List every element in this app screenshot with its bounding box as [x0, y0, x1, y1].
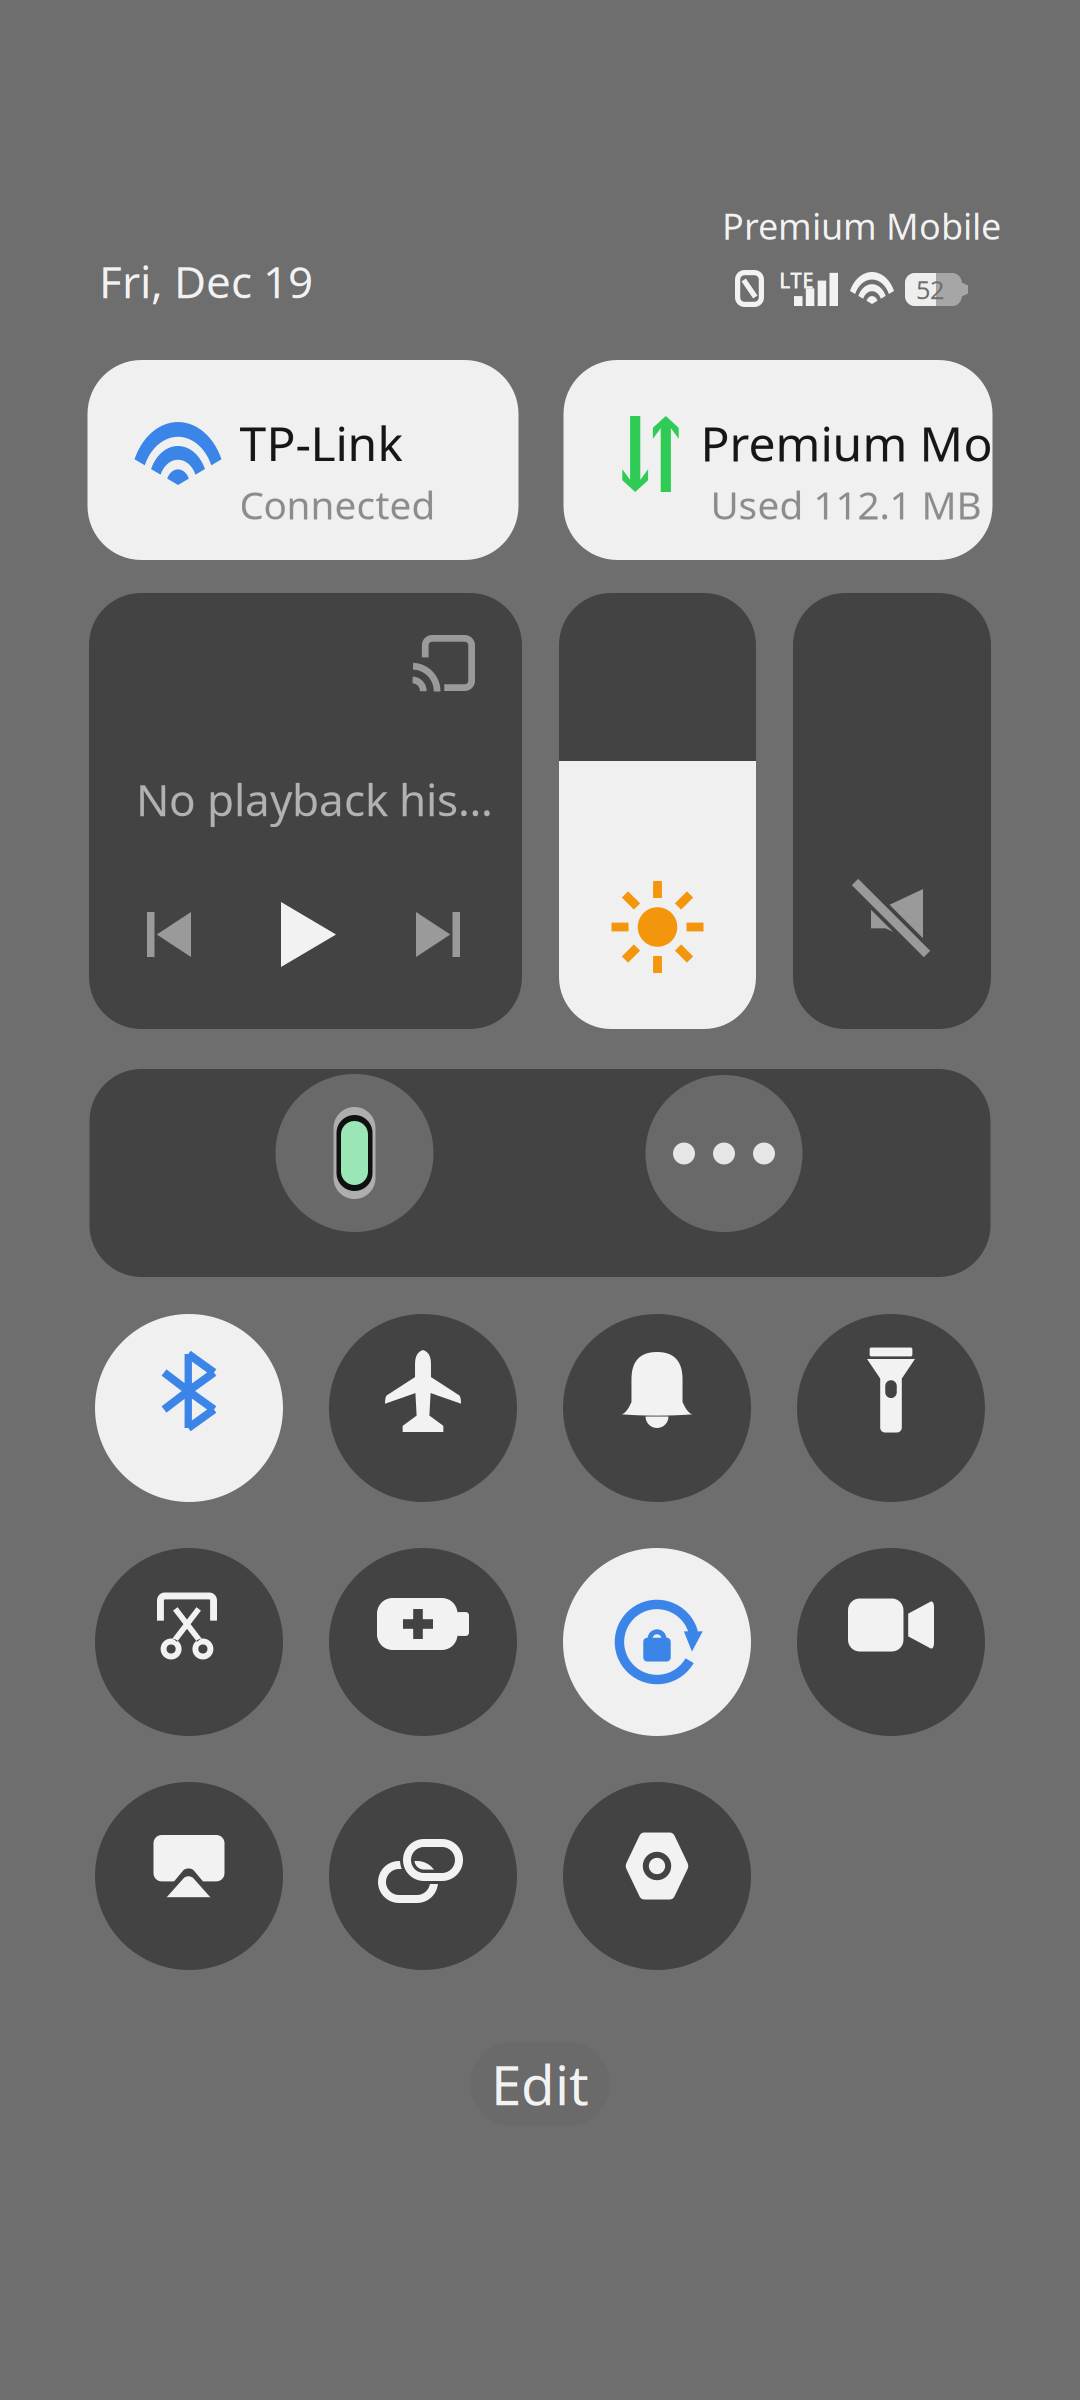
button[interactable]: Flashlight [797, 1314, 985, 1502]
staticText: Used 112.1 MB [710, 479, 981, 530]
button[interactable]: Airplane mode [329, 1314, 517, 1502]
button[interactable]: Cast [95, 1782, 283, 1970]
button[interactable]: Screen record [797, 1548, 985, 1736]
button[interactable]: Battery saver [329, 1548, 517, 1736]
button[interactable]: Link [329, 1782, 517, 1970]
button[interactable]: Settings [563, 1782, 751, 1970]
button[interactable]: Premium Mobi [563, 360, 992, 560]
staticText: 52 [916, 273, 944, 306]
button[interactable]: TP-Link [87, 360, 518, 560]
staticText: Edit [491, 2048, 589, 2120]
button[interactable]: Screenshot [95, 1548, 283, 1736]
button[interactable]: Bluetooth [95, 1314, 283, 1502]
button[interactable]: Mute [793, 593, 991, 1029]
button[interactable]: More [645, 1075, 802, 1232]
staticText: No playback his… [136, 770, 493, 828]
button[interactable]: Rotation lock [563, 1548, 751, 1736]
staticText: Premium Mobile [722, 202, 1001, 250]
staticText: TP-Link [239, 411, 403, 475]
button[interactable]: No playback his… [89, 593, 522, 1029]
button[interactable]: Edit [470, 2042, 610, 2126]
button[interactable]: Device [275, 1074, 433, 1232]
staticText: Premium Mobi [700, 411, 1034, 475]
staticText: Fri, Dec 19 [99, 252, 313, 310]
button[interactable]: Do not disturb [563, 1314, 751, 1502]
staticText: Connected [239, 479, 435, 530]
staticText: LTE [779, 266, 814, 294]
button[interactable]: Brightness [559, 593, 756, 1029]
